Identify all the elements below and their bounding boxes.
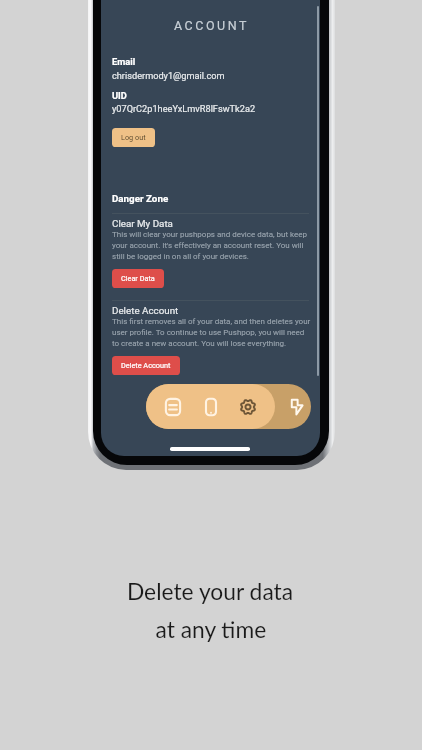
button[interactable]: Devices — [193, 384, 229, 429]
staticText: Log out — [121, 133, 146, 142]
button[interactable]: Push — [279, 384, 315, 429]
staticText: Delete Account — [121, 361, 171, 370]
button[interactable]: Settings — [230, 384, 266, 429]
button[interactable]: Clear Data — [112, 269, 164, 288]
staticText: Danger Zone — [112, 193, 312, 204]
staticText: This will clear your pushpops and device… — [112, 230, 312, 261]
button[interactable]: Log out — [112, 128, 155, 147]
staticText: chrisdermody1@gmail.com — [112, 70, 312, 81]
staticText: ACCOUNT — [102, 18, 320, 33]
staticText: Delete Account — [112, 305, 312, 316]
staticText: Delete your data — [100, 577, 320, 604]
button[interactable]: Notes — [155, 384, 191, 429]
staticText: Clear Data — [121, 274, 155, 283]
staticText: y07QrC2p1heeYxLmvR8lFswTk2a2 — [112, 103, 312, 114]
staticText: Clear My Data — [112, 218, 312, 229]
staticText: UID — [112, 90, 312, 101]
staticText: Email — [112, 56, 312, 67]
staticText: This first removes all of your data, and… — [112, 317, 312, 348]
staticText: at any time — [101, 615, 321, 642]
button[interactable]: Delete Account — [112, 356, 180, 375]
